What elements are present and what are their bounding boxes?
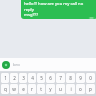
button[interactable]: hello!!! how are you my call no reply <box>21 0 96 19</box>
button[interactable]: 1 <box>1 73 9 83</box>
button[interactable]: 5 <box>37 73 45 83</box>
button[interactable]: 6 <box>46 73 55 83</box>
button[interactable]: y <box>46 84 55 94</box>
staticText: 6 <box>49 75 52 81</box>
button[interactable]: bro <box>13 60 94 69</box>
staticText: 2 <box>13 75 16 81</box>
staticText: i <box>70 86 72 92</box>
button[interactable]: u <box>56 84 65 94</box>
button[interactable]: t <box>37 84 45 94</box>
button[interactable]: 3 <box>19 73 27 83</box>
staticText: 3 <box>22 75 25 81</box>
button[interactable]: 7 <box>56 73 65 83</box>
button[interactable]: 0 <box>86 73 95 83</box>
staticText: hello!!! how are you my call no reply <box>24 1 94 12</box>
staticText: 5 <box>40 75 43 81</box>
staticText: r <box>31 86 33 92</box>
button[interactable]: w <box>10 84 18 94</box>
staticText: 0 <box>89 75 92 81</box>
staticText: e <box>22 86 25 92</box>
staticText: 9 <box>79 75 82 81</box>
button[interactable]: e <box>19 84 27 94</box>
button[interactable]: r <box>28 84 36 94</box>
button[interactable]: 2 <box>10 73 18 83</box>
staticText: t <box>40 86 42 92</box>
staticText: o <box>79 86 82 92</box>
staticText: 4 <box>31 75 34 81</box>
staticText: 7 <box>59 75 62 81</box>
button[interactable]: q <box>1 84 9 94</box>
button[interactable]: i <box>66 84 75 94</box>
staticText: w <box>12 86 16 92</box>
button[interactable]: o <box>76 84 85 94</box>
button[interactable]: Contact <box>2 61 10 69</box>
staticText: u <box>59 86 62 92</box>
staticText: 8 <box>69 75 72 81</box>
staticText: 1 <box>4 75 7 81</box>
staticText: q <box>4 86 7 92</box>
button[interactable]: 8 <box>66 73 75 83</box>
staticText: y <box>49 86 52 92</box>
button[interactable]: 4 <box>28 73 36 83</box>
staticText: bro <box>13 62 20 68</box>
button[interactable]: 9 <box>76 73 85 83</box>
staticText: p <box>89 86 92 92</box>
staticText: msg??? <box>24 12 38 18</box>
button[interactable]: p <box>86 84 95 94</box>
